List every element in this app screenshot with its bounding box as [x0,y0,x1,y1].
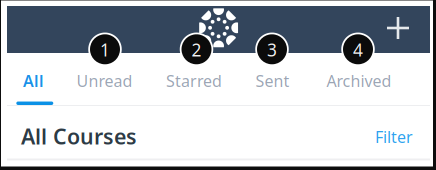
button[interactable]: All [7,53,63,105]
button[interactable]: Starred [151,53,240,105]
staticText: 1 [100,38,110,61]
staticText: Sent [255,70,289,91]
button[interactable]: Sent [240,53,308,105]
button[interactable]: Archived [308,53,410,105]
staticText: 4 [353,38,363,61]
staticText: Starred [166,70,222,91]
button[interactable]: Filter [375,122,413,143]
staticText: 3 [267,38,277,61]
button[interactable]: Unread [63,53,151,105]
staticText: Archived [326,70,391,91]
staticText: Unread [76,70,132,91]
staticText: Filter [375,126,413,147]
staticText: All Courses [21,122,137,150]
staticText: All [23,70,44,91]
staticText: 2 [191,38,201,61]
button[interactable]: Compose message [375,5,421,51]
